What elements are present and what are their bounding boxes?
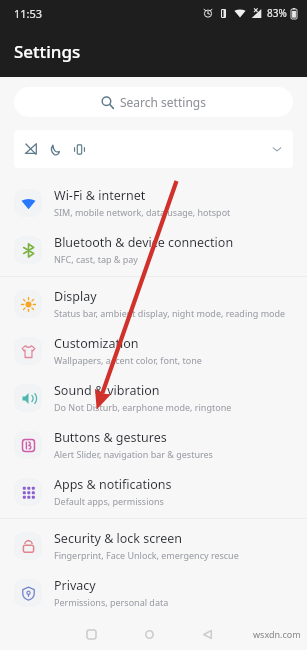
button[interactable] — [14, 130, 293, 168]
staticText: Customization — [54, 335, 139, 352]
button[interactable]: Back — [194, 621, 220, 647]
staticText: Search settings — [120, 94, 206, 110]
staticText: 83% — [267, 6, 287, 20]
staticText: 11:53 — [14, 6, 43, 21]
button[interactable]: Sound & vibration — [0, 374, 307, 421]
button[interactable]: Bluetooth & device connection — [0, 226, 307, 273]
staticText: NFC, cast, tap & pay — [54, 253, 138, 265]
staticText: SIM, mobile network, data usage, hotspot — [54, 206, 231, 218]
staticText: Bluetooth & device connection — [54, 234, 234, 251]
staticText: Settings — [14, 40, 81, 63]
staticText: Wi-Fi & internet — [54, 187, 146, 204]
staticText: wsxdn.com — [253, 628, 301, 640]
staticText: Status bar, ambient display, night mode,… — [54, 307, 286, 319]
staticText: Default apps, permissions — [54, 495, 164, 507]
button[interactable]: Customization — [0, 327, 307, 374]
staticText: Sound & vibration — [54, 382, 160, 399]
button[interactable]: Home — [136, 621, 162, 647]
staticText: Permissions, personal data — [54, 596, 169, 608]
button[interactable]: Display — [0, 280, 307, 327]
button[interactable]: Apps & notifications — [0, 468, 307, 515]
button[interactable]: Wi-Fi & internet — [0, 179, 307, 226]
staticText: Security & lock screen — [54, 530, 183, 547]
staticText: Apps & notifications — [54, 476, 172, 493]
button[interactable]: Security & lock screen — [0, 522, 307, 569]
button[interactable]: Recent apps — [78, 621, 104, 647]
button[interactable]: Privacy — [0, 569, 307, 616]
button[interactable]: Search settings — [14, 87, 293, 117]
staticText: Wallpapers, accent color, font, tone — [54, 354, 202, 366]
staticText: Do Not Disturb, earphone mode, ringtone — [54, 401, 232, 413]
button[interactable]: Buttons & gestures — [0, 421, 307, 468]
staticText: Alert Slider, navigation bar & gestures — [54, 448, 213, 460]
staticText: Display — [54, 288, 97, 305]
staticText: Buttons & gestures — [54, 429, 167, 446]
staticText: Fingerprint, Face Unlock, emergency resc… — [54, 549, 239, 561]
staticText: Privacy — [54, 577, 96, 594]
